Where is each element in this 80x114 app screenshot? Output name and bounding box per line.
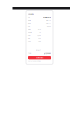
- staticText: Pro: [38, 28, 41, 30]
- staticText: 103: [38, 40, 41, 42]
- staticText: Acme Corp: [43, 16, 51, 18]
- staticText: Seats: [28, 31, 32, 33]
- staticText: Date: [28, 19, 31, 21]
- staticText: No.: [28, 25, 30, 27]
- staticText: Due: [28, 22, 31, 24]
- staticText: To: [28, 16, 30, 18]
- staticText: $1,399.68: [44, 52, 51, 54]
- staticText: 0042: [47, 25, 51, 27]
- staticText: Secured by Stripe: [28, 60, 41, 62]
- staticText: Apr 11: [46, 22, 51, 24]
- staticText: Plan: [28, 28, 31, 30]
- staticText: Net: [28, 34, 30, 36]
- staticText: Mar 12: [46, 19, 51, 21]
- staticText: Tax: [28, 40, 31, 42]
- staticText: Incl. VAT: [36, 49, 41, 51]
- staticText: 12: [39, 31, 41, 33]
- staticText: Off: [28, 37, 30, 39]
- button[interactable]: Pay invoice: [28, 56, 51, 59]
- staticText: Invoice: [28, 13, 34, 15]
- staticText: 1,440: [37, 34, 41, 36]
- staticText: Total: [28, 52, 31, 54]
- staticText: Pay invoice: [35, 57, 43, 59]
